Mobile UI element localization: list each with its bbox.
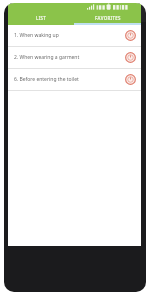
- button[interactable]: LIST: [8, 12, 74, 25]
- button[interactable]: FAVORITES: [74, 12, 141, 25]
- button[interactable]: 2. When wearing a garment: [8, 47, 141, 69]
- button[interactable]: Set reminder: [125, 30, 136, 41]
- button[interactable]: Set reminder: [125, 52, 136, 63]
- button[interactable]: Set reminder: [125, 74, 136, 85]
- staticText: LIST: [36, 15, 47, 21]
- staticText: FAVORITES: [95, 15, 121, 21]
- staticText: 6. Before entering the toilet: [14, 76, 79, 83]
- button[interactable]: 1. When waking up: [8, 25, 141, 47]
- staticText: 2. When wearing a garment: [14, 54, 80, 61]
- button[interactable]: 6. Before entering the toilet: [8, 69, 141, 91]
- staticText: 1. When waking up: [14, 32, 59, 39]
